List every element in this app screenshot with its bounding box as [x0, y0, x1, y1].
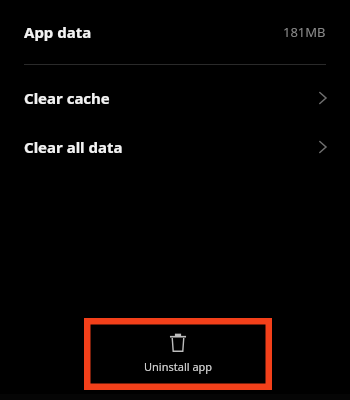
- staticText: Uninstall app: [144, 359, 213, 374]
- staticText: 181MB: [283, 23, 326, 41]
- button[interactable]: Clear cache: [0, 82, 350, 114]
- button[interactable]: Uninstall app: [91, 325, 265, 383]
- staticText: Clear all data: [24, 137, 123, 157]
- button[interactable]: App data: [0, 0, 350, 64]
- button[interactable]: Clear all data: [0, 131, 350, 163]
- staticText: App data: [24, 22, 92, 42]
- staticText: Clear cache: [24, 88, 110, 108]
